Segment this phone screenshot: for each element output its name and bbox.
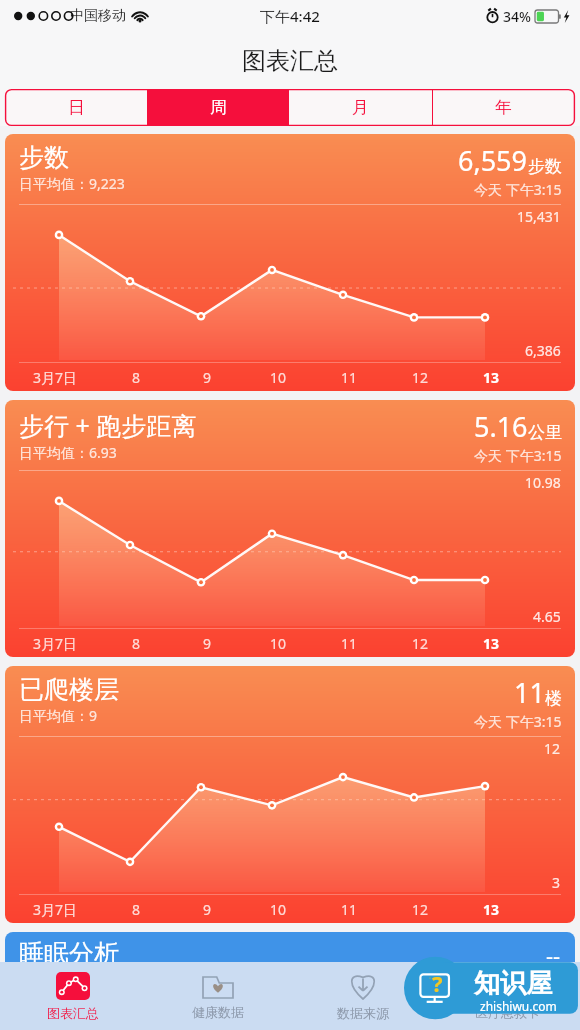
staticText: 日平均值：9 bbox=[19, 706, 98, 725]
staticText: 下午4:42 bbox=[260, 6, 320, 26]
staticText: 5.16 bbox=[474, 408, 528, 445]
staticText: 11 bbox=[514, 674, 545, 711]
staticText: 10 bbox=[270, 900, 287, 919]
staticText: 公里 bbox=[528, 422, 562, 443]
staticText: 今天 下午3:15 bbox=[474, 446, 562, 465]
staticText: 数据来源 bbox=[337, 1005, 389, 1021]
staticText: 知识屋 bbox=[474, 967, 552, 1000]
button[interactable]: 医疗急救卡 bbox=[435, 962, 580, 1030]
staticText: 步行 + 跑步距离 bbox=[19, 408, 197, 442]
staticText: 3月7日 bbox=[33, 368, 78, 387]
staticText: 11 bbox=[341, 900, 358, 919]
staticText: 健康数据 bbox=[192, 1004, 244, 1020]
staticText: 11 bbox=[341, 368, 358, 387]
staticText: 4.65 bbox=[533, 607, 561, 626]
staticText: 8 bbox=[132, 634, 141, 653]
staticText: 9 bbox=[203, 368, 212, 387]
staticText: 3 bbox=[552, 873, 561, 892]
staticText: -- bbox=[546, 940, 561, 970]
staticText: 10 bbox=[270, 368, 287, 387]
staticText: 中国移动 bbox=[70, 7, 126, 25]
button[interactable]: 月 bbox=[289, 89, 432, 126]
button[interactable]: 睡眠分析 bbox=[5, 932, 575, 1012]
staticText: 11 bbox=[341, 634, 358, 653]
button[interactable]: 已爬楼层 bbox=[5, 666, 575, 923]
staticText: 日平均值：9,223 bbox=[19, 174, 125, 193]
staticText: 医疗急救卡 bbox=[475, 1004, 540, 1020]
staticText: 6,559 bbox=[458, 142, 528, 179]
staticText: 6,386 bbox=[525, 341, 561, 360]
staticText: 8 bbox=[132, 368, 141, 387]
staticText: 今天 下午3:15 bbox=[474, 180, 562, 199]
staticText: 睡眠分析 bbox=[19, 938, 119, 969]
staticText: 12 bbox=[412, 368, 429, 387]
staticText: 日平均值：6.93 bbox=[19, 443, 117, 462]
staticText: 月 bbox=[352, 97, 369, 118]
button[interactable]: 日 bbox=[5, 89, 147, 126]
button[interactable]: 步数 bbox=[5, 134, 575, 391]
button[interactable]: 步行 + 跑步距离 bbox=[5, 400, 575, 657]
staticText: 步数 bbox=[528, 156, 562, 177]
staticText: 9 bbox=[203, 634, 212, 653]
button[interactable]: 数据来源 bbox=[290, 962, 435, 1030]
staticText: 已爬楼层 bbox=[19, 674, 119, 705]
staticText: 34% bbox=[503, 7, 531, 26]
button[interactable]: 图表汇总 bbox=[0, 962, 145, 1030]
staticText: 楼 bbox=[545, 688, 562, 709]
staticText: 3月7日 bbox=[33, 900, 78, 919]
button[interactable]: 健康数据 bbox=[145, 962, 290, 1030]
button[interactable]: 周 bbox=[147, 89, 289, 126]
staticText: 年 bbox=[495, 97, 512, 118]
staticText: 12 bbox=[412, 634, 429, 653]
staticText: 日 bbox=[68, 97, 85, 118]
staticText: 12 bbox=[544, 739, 561, 758]
staticText: 13 bbox=[483, 634, 500, 653]
staticText: 9 bbox=[203, 900, 212, 919]
staticText: zhishiwu.com bbox=[480, 998, 557, 1014]
staticText: 周 bbox=[210, 97, 227, 118]
staticText: 8 bbox=[132, 900, 141, 919]
staticText: 13 bbox=[483, 900, 500, 919]
staticText: 10.98 bbox=[525, 473, 561, 492]
staticText: 步数 bbox=[19, 142, 69, 173]
staticText: 图表汇总 bbox=[47, 1005, 99, 1021]
staticText: 12 bbox=[412, 900, 429, 919]
staticText: 15,431 bbox=[517, 207, 561, 226]
button[interactable]: 年 bbox=[432, 89, 575, 126]
staticText: 图表汇总 bbox=[242, 46, 338, 76]
staticText: 今天 下午3:15 bbox=[474, 712, 562, 731]
staticText: 3月7日 bbox=[33, 634, 78, 653]
staticText: 13 bbox=[483, 368, 500, 387]
staticText: 10 bbox=[270, 634, 287, 653]
staticText: ? bbox=[432, 968, 443, 998]
